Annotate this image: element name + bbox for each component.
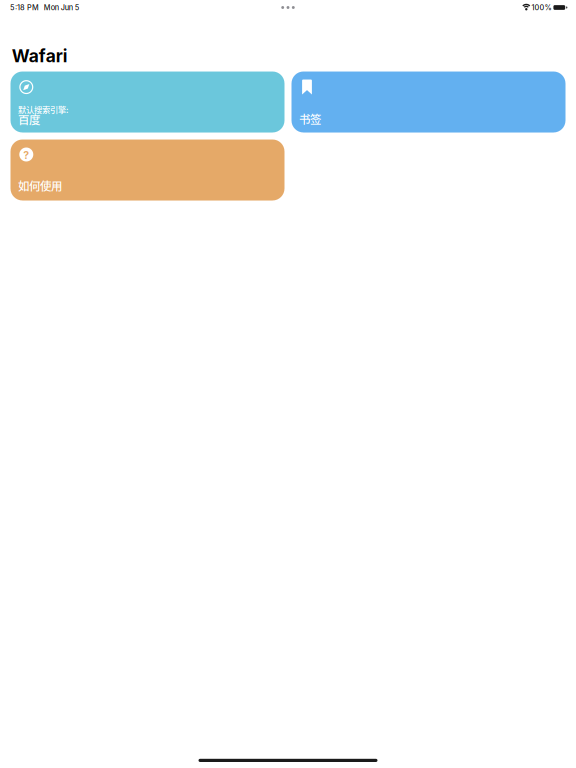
staticText: 书签 (299, 110, 321, 127)
staticText: 如何使用 (18, 177, 62, 194)
button[interactable]: 默认搜索引擎: 百度 (10, 71, 284, 132)
staticText: 百度 (18, 111, 40, 127)
staticText: ? (23, 149, 29, 161)
staticText: Wafari (12, 45, 68, 66)
staticText: 默认搜索引擎: (18, 103, 68, 115)
staticText: Mon Jun 5 (44, 3, 80, 12)
button[interactable]: 如何使用 (10, 139, 284, 200)
staticText: 100% (531, 3, 551, 12)
staticText: 5:18 PM (10, 3, 39, 12)
button[interactable]: 书签 (291, 71, 565, 132)
